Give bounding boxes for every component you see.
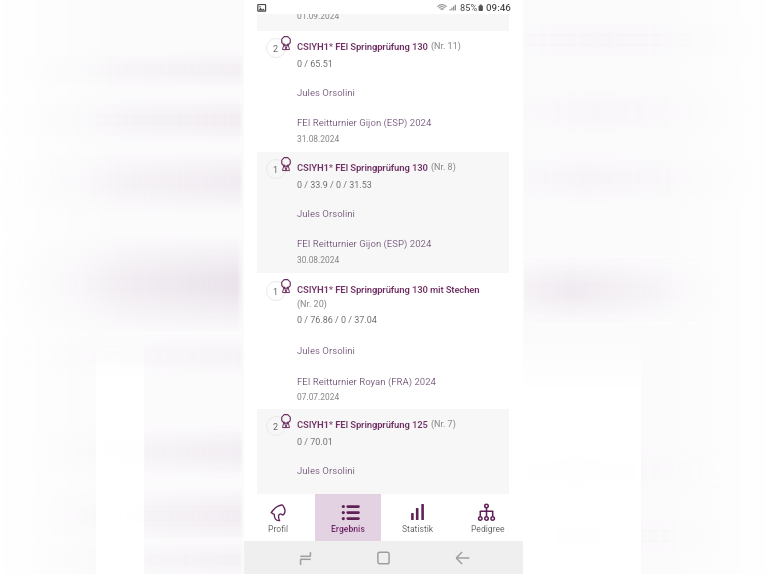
staticText: FEI Reitturnier Gijon (ESP) 2024 (297, 117, 432, 128)
button[interactable]: Recent apps (288, 543, 318, 573)
staticText: FEI Reitturnier Royan (FRA) 2024 (297, 376, 436, 387)
staticText: FEI Reitturnier Gijon (ESP) 2024 (297, 238, 432, 249)
button[interactable]: Back (445, 543, 475, 573)
staticText: 0 / 70.01 (297, 437, 333, 448)
staticText: 85% (460, 2, 478, 13)
staticText: 31.08.2024 (297, 134, 340, 144)
button[interactable]: 2 (257, 409, 509, 494)
staticText: Jules Orsolini (297, 345, 355, 356)
button[interactable]: Profil (244, 494, 313, 541)
staticText: 2 (273, 422, 279, 433)
button[interactable]: 1 (257, 152, 509, 273)
staticText: 01.09.2024 (297, 11, 340, 21)
staticText: CSIYH1* FEI Springprüfung 130 (297, 162, 428, 173)
staticText: 0 / 33.9 / 0 / 31.53 (297, 180, 372, 191)
staticText: CSIYH1* FEI Springprüfung 130 mit Steche… (297, 284, 480, 295)
staticText: (Nr. 11) (431, 41, 461, 52)
staticText: Profil (268, 524, 289, 534)
staticText: (Nr. 8) (431, 162, 456, 173)
staticText: Pedigree (471, 524, 505, 534)
staticText: 30.08.2024 (297, 255, 340, 265)
staticText: 2 (273, 44, 279, 55)
staticText: Statistik (402, 524, 434, 534)
button[interactable]: Pedigree (453, 494, 523, 541)
button[interactable]: Statistik (383, 494, 453, 541)
staticText: 0 / 65.51 (297, 59, 333, 70)
staticText: 09:46 (486, 2, 511, 13)
staticText: 0 / 76.86 / 0 / 37.04 (297, 315, 377, 326)
staticText: Jules Orsolini (297, 465, 355, 476)
staticText: 07.07.2024 (297, 392, 340, 402)
button[interactable]: 2 (257, 31, 509, 152)
staticText: CSIYH1* FEI Springprüfung 125 (297, 419, 428, 430)
staticText: Jules Orsolini (297, 87, 355, 98)
button[interactable]: 1 (257, 274, 509, 408)
staticText: Ergebnis (331, 524, 365, 534)
staticText: (Nr. 20) (297, 299, 327, 310)
staticText: 1 (273, 165, 279, 176)
staticText: CSIYH1* FEI Springprüfung 130 (297, 41, 428, 52)
button[interactable]: Home (366, 543, 396, 573)
staticText: Jules Orsolini (297, 208, 355, 219)
button[interactable]: Ergebnis (313, 494, 383, 541)
staticText: (Nr. 7) (431, 419, 456, 430)
staticText: 1 (273, 287, 279, 298)
